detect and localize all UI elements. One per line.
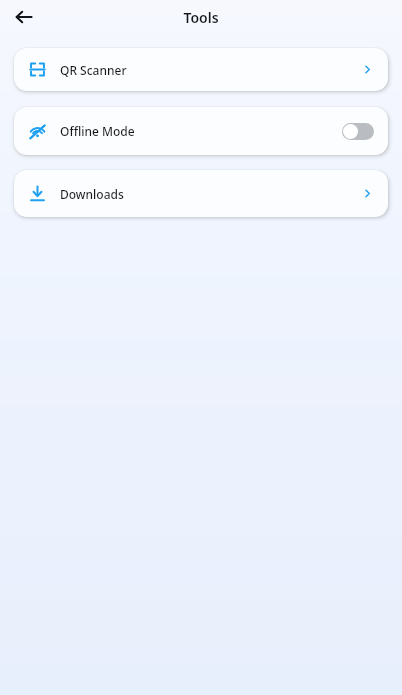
staticText: Downloads [60, 186, 124, 202]
button[interactable]: QR Scanner [14, 48, 388, 91]
staticText: QR Scanner [60, 62, 127, 78]
button[interactable]: Downloads [14, 170, 388, 217]
button[interactable]: Back [6, 0, 42, 34]
button[interactable]: Offline Mode [14, 107, 388, 155]
button[interactable]: Offline Mode toggle [342, 123, 374, 140]
staticText: Offline Mode [60, 123, 135, 139]
staticText: Tools [183, 8, 219, 27]
